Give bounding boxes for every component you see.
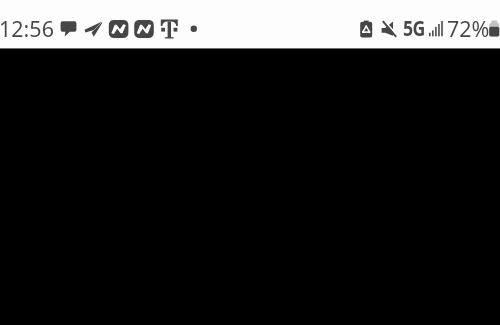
button[interactable]: Content — [0, 0, 500, 325]
staticText: 12:56 — [0, 14, 54, 43]
other: Status bar — [0, 0, 500, 49]
staticText: 5G — [403, 14, 425, 42]
staticText: 72% — [447, 14, 490, 43]
